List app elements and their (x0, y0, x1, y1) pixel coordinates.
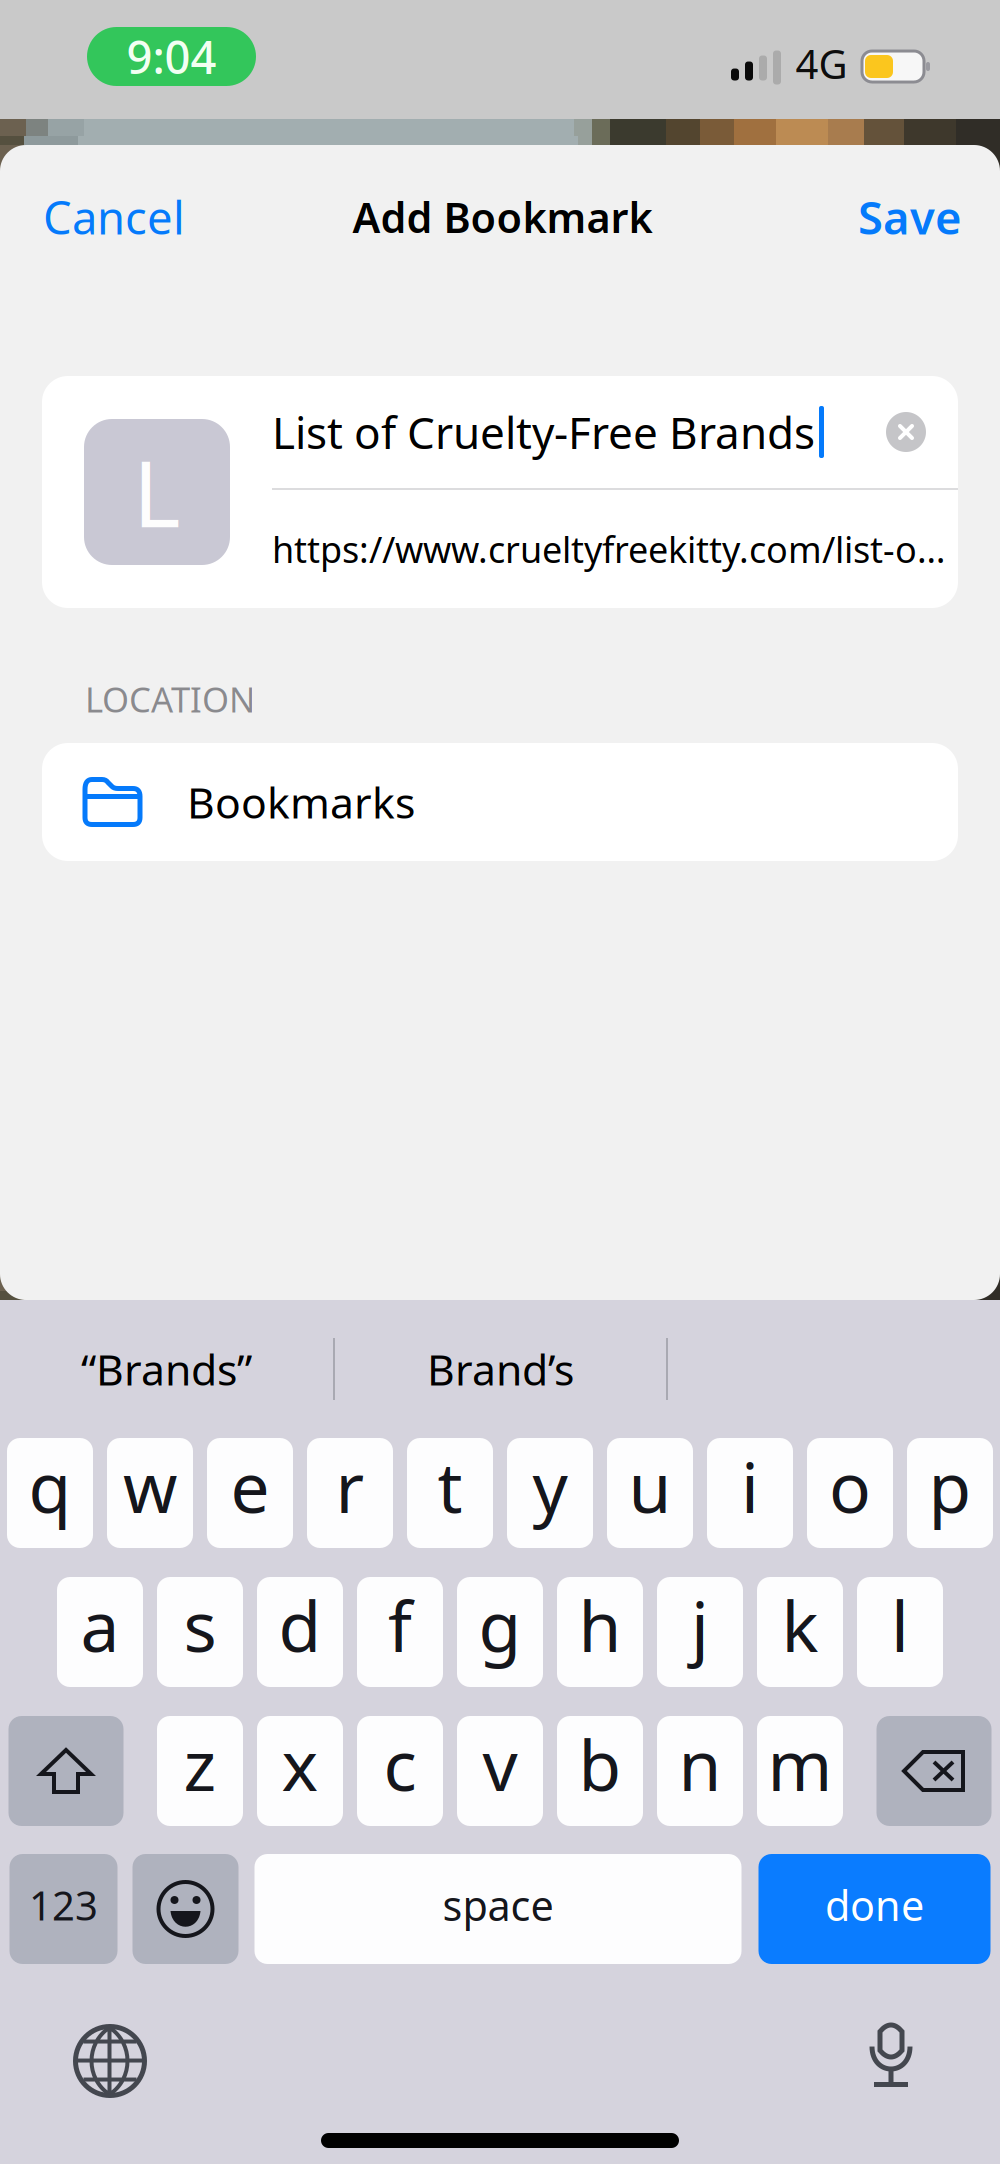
button[interactable]: u (607, 1438, 693, 1548)
button[interactable]: e (207, 1438, 293, 1548)
button[interactable]: i (707, 1438, 793, 1548)
button[interactable]: Bookmarks (42, 743, 958, 861)
button[interactable]: q (7, 1438, 93, 1548)
button[interactable]: w (107, 1438, 193, 1548)
staticText: l (891, 1579, 909, 1671)
button[interactable]: Clear text (876, 412, 958, 452)
staticText: n (678, 1718, 721, 1810)
button[interactable]: a (57, 1577, 143, 1687)
button[interactable]: f (357, 1577, 443, 1687)
staticText: e (230, 1440, 269, 1532)
button[interactable]: r (307, 1438, 393, 1548)
button[interactable]: Emoji (132, 1854, 238, 1964)
staticText: x (281, 1718, 318, 1810)
button[interactable]: k (757, 1577, 843, 1687)
button[interactable]: v (457, 1716, 543, 1826)
button[interactable]: g (457, 1577, 543, 1687)
staticText: s (183, 1579, 216, 1671)
staticText: 123 (29, 1878, 98, 1931)
staticText: Add Bookmark (352, 190, 652, 244)
button[interactable]: m (757, 1716, 843, 1826)
staticText: h (578, 1579, 621, 1671)
button[interactable]: Save (722, 145, 1000, 289)
staticText: o (829, 1440, 871, 1532)
button[interactable]: s (157, 1577, 243, 1687)
button[interactable]: y (507, 1438, 593, 1548)
button[interactable]: space (254, 1854, 741, 1964)
staticText: Cancel (43, 187, 185, 247)
staticText: w (123, 1440, 177, 1532)
staticText: i (741, 1440, 759, 1532)
staticText: 9:04 (126, 26, 216, 87)
staticText: b (578, 1718, 621, 1810)
staticText: q (28, 1440, 71, 1532)
button[interactable]: done (758, 1854, 990, 1964)
staticText: z (183, 1718, 216, 1810)
staticText: m (767, 1718, 832, 1810)
button[interactable]: x (257, 1716, 343, 1826)
button[interactable]: n (657, 1716, 743, 1826)
button[interactable]: c (357, 1716, 443, 1826)
staticText: Bookmarks (187, 774, 415, 830)
staticText: Save (858, 187, 962, 247)
button[interactable]: h (557, 1577, 643, 1687)
button[interactable]: t (407, 1438, 493, 1548)
button[interactable]: d (257, 1577, 343, 1687)
staticText: j (691, 1579, 709, 1671)
staticText: f (388, 1579, 412, 1671)
button[interactable]: p (907, 1438, 993, 1548)
button[interactable]: Cancel (0, 145, 283, 289)
staticText: p (928, 1440, 971, 1532)
button[interactable]: Next keyboard (58, 2009, 162, 2113)
staticText: a (80, 1579, 119, 1671)
staticText: d (278, 1579, 321, 1671)
button[interactable]: j (657, 1577, 743, 1687)
button[interactable]: Delete (876, 1716, 991, 1826)
staticText: y (532, 1440, 567, 1532)
staticText: c (383, 1718, 416, 1810)
staticText: https://www.crueltyfreekitty.com/list-o… (272, 525, 945, 573)
staticText: t (437, 1440, 462, 1532)
staticText: v (482, 1718, 517, 1810)
staticText: Brand’s (427, 1341, 574, 1397)
staticText: r (335, 1440, 364, 1532)
staticText: LOCATION (85, 676, 255, 722)
staticText: space (442, 1878, 553, 1932)
button[interactable]: “Brands” (0, 1304, 333, 1434)
button[interactable]: l (857, 1577, 943, 1687)
button[interactable]: 123 (9, 1854, 117, 1964)
button[interactable]: z (157, 1716, 243, 1826)
staticText: done (825, 1878, 924, 1932)
button[interactable]: Shift (8, 1716, 123, 1826)
staticText: k (781, 1579, 818, 1671)
button[interactable]: Brand’s (335, 1304, 666, 1434)
button[interactable]: o (807, 1438, 893, 1548)
button[interactable]: b (557, 1716, 643, 1826)
staticText: u (628, 1440, 671, 1532)
staticText: 4G (795, 37, 847, 90)
staticText: List of Cruelty-Free Brands (272, 403, 815, 461)
staticText: g (478, 1579, 521, 1671)
staticText: L (133, 432, 181, 552)
button[interactable]: Dictation (839, 2009, 943, 2113)
staticText: “Brands” (81, 1341, 252, 1397)
